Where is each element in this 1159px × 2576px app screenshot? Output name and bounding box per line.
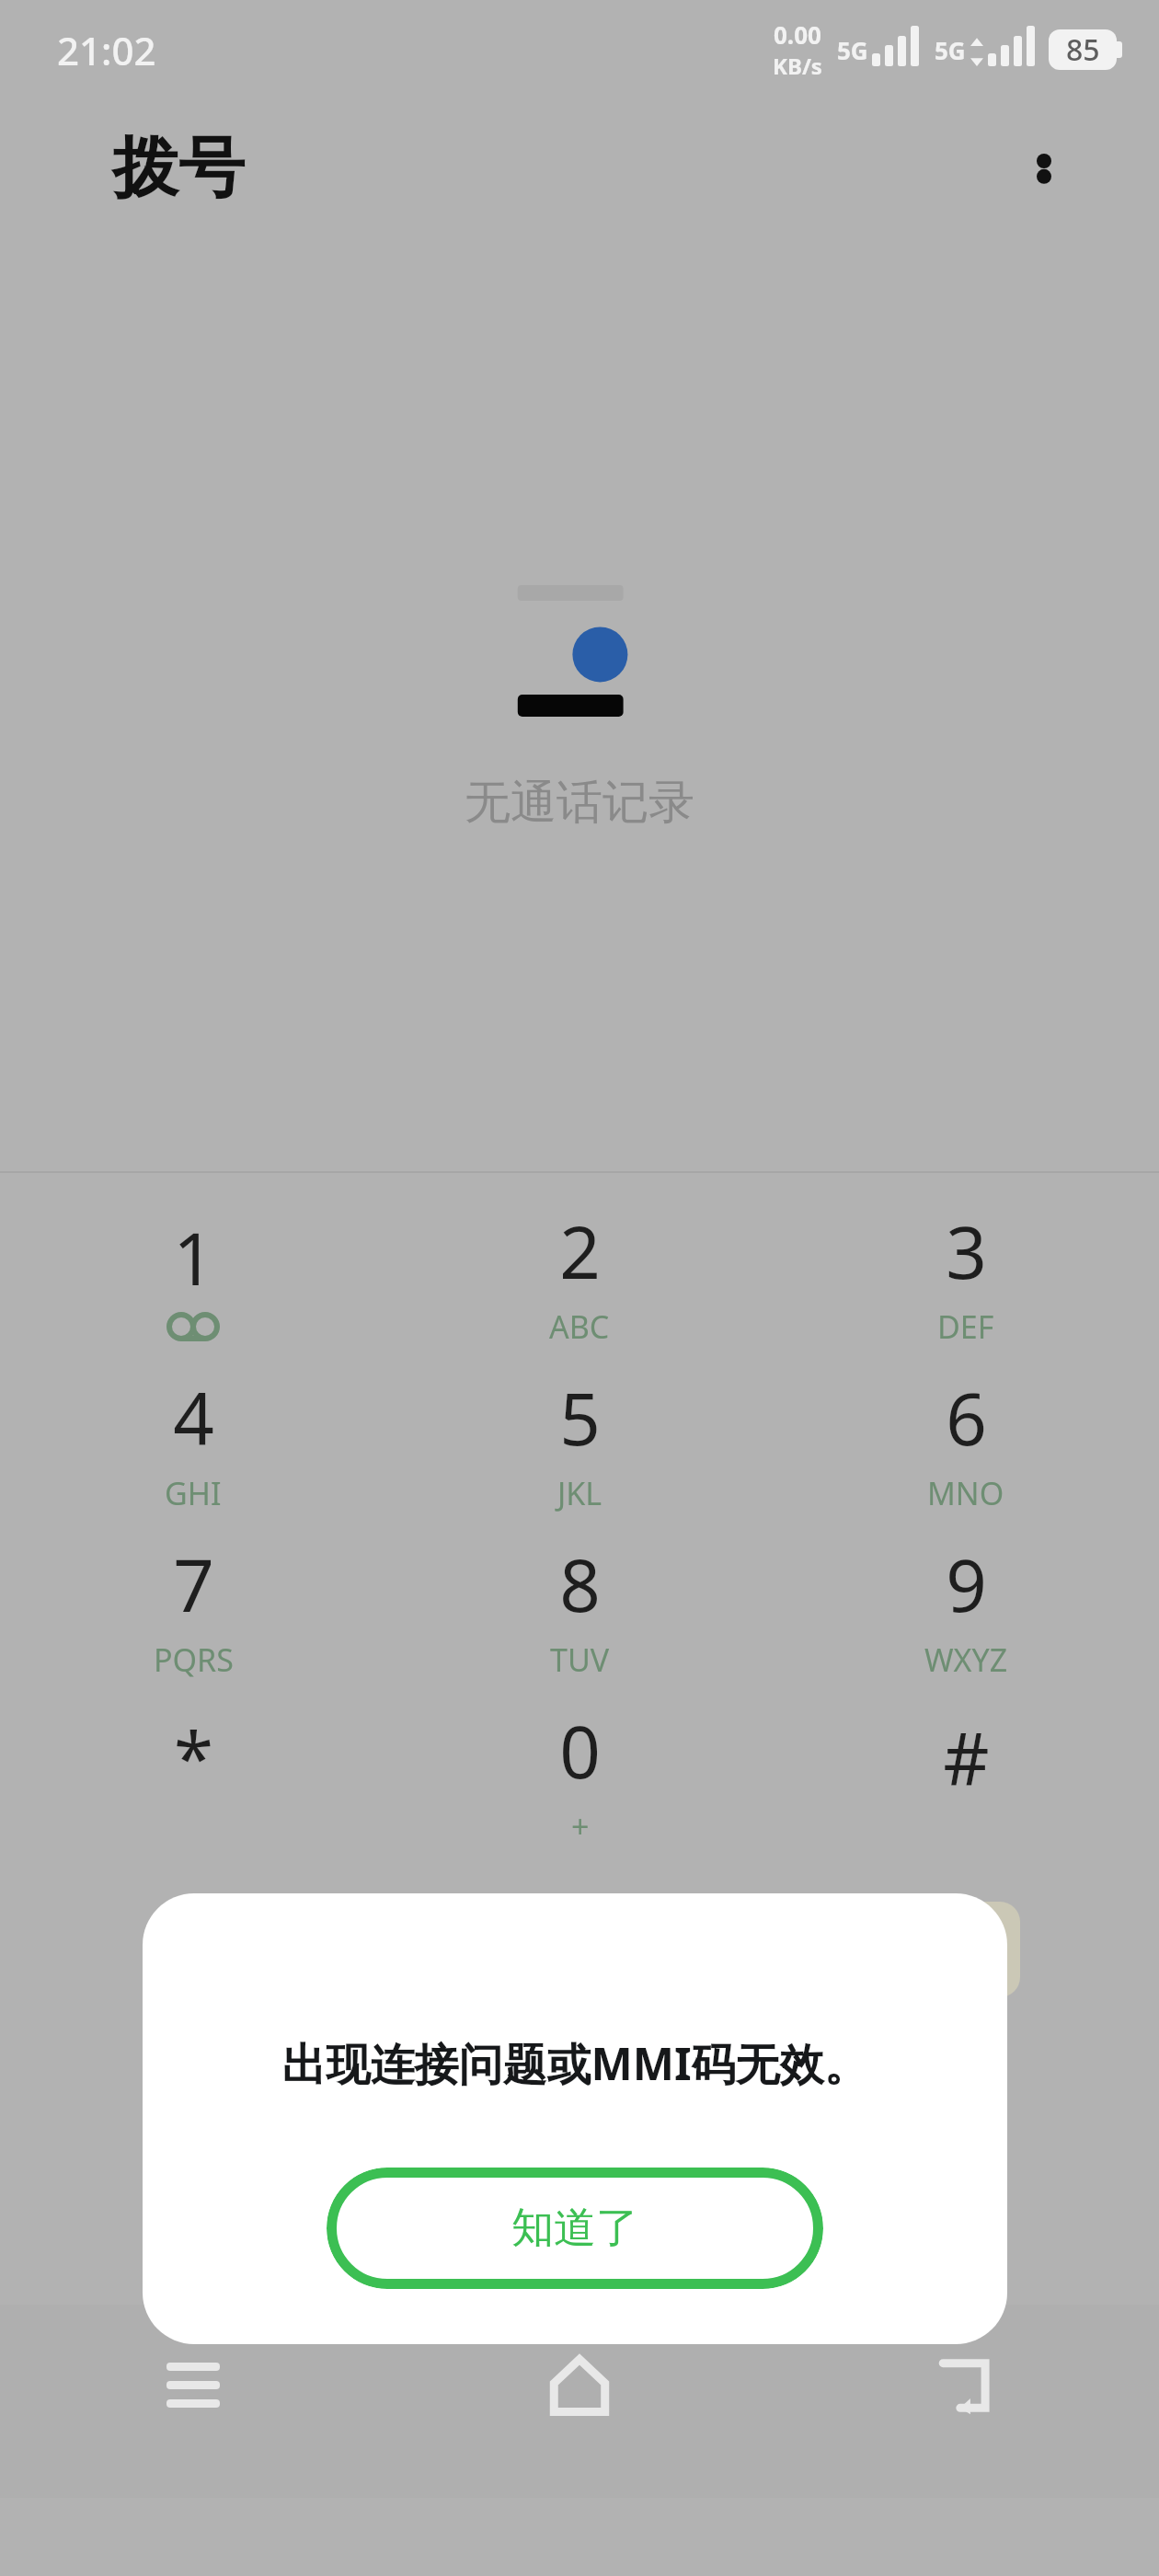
button[interactable]: 8 [386, 1524, 773, 1691]
staticText: 联系人 [524, 2217, 635, 2263]
button[interactable]: Home [386, 2330, 773, 2441]
button[interactable]: More options [1003, 127, 1085, 210]
staticText: 知道了 [511, 2202, 638, 2255]
button[interactable]: 3 [773, 1191, 1159, 1358]
staticText: GHI [165, 1472, 222, 1514]
staticText: 0.00 [774, 18, 821, 51]
staticText: ABC [549, 1305, 610, 1348]
staticText: 2 [559, 1202, 601, 1300]
button[interactable]: Keypad options [0, 1857, 386, 2041]
button[interactable]: * [0, 1691, 386, 1857]
staticText: 5G [935, 34, 966, 66]
button[interactable]: 6 [773, 1358, 1159, 1524]
staticText: 6 [946, 1369, 987, 1466]
staticText: JKL [557, 1472, 602, 1514]
button[interactable]: 拨号 [0, 2176, 386, 2305]
staticText: 1 [173, 1209, 214, 1306]
button[interactable]: Recents [0, 2330, 386, 2441]
staticText: PQRS [154, 1639, 234, 1681]
staticText: 21:02 [57, 24, 156, 76]
staticText: WXYZ [924, 1639, 1008, 1681]
button[interactable]: 7 [0, 1524, 386, 1691]
staticText: MNO [927, 1472, 1004, 1514]
staticText: + [571, 1805, 590, 1847]
staticText: # [943, 1708, 990, 1806]
staticText: 7 [173, 1535, 214, 1633]
button[interactable]: Back [773, 2330, 1159, 2441]
button[interactable]: 5 [386, 1358, 773, 1524]
button[interactable]: # [773, 1691, 1159, 1857]
staticText: 出现连接问题或MMI码无效。 [281, 2033, 868, 2094]
button[interactable]: 4 [0, 1358, 386, 1524]
staticText: 9 [946, 1535, 987, 1633]
staticText: 无通话记录 [465, 774, 694, 832]
staticText: 8 [559, 1535, 601, 1633]
staticText: TUV [550, 1639, 610, 1681]
button[interactable]: 知道了 [327, 2168, 823, 2289]
button[interactable]: Backspace [773, 1857, 1159, 2041]
staticText: 3 [946, 1202, 987, 1300]
button[interactable]: 2 [386, 1191, 773, 1358]
button[interactable]: 1 [0, 1191, 386, 1358]
staticText: 5G [837, 34, 868, 66]
staticText: 85 [1066, 29, 1100, 70]
staticText: * [174, 1708, 213, 1806]
staticText: 4 [173, 1369, 214, 1466]
staticText: DEF [937, 1305, 994, 1348]
staticText: 0 [559, 1702, 601, 1800]
button[interactable]: 联系人 [386, 2176, 773, 2305]
staticText: KB/s [773, 51, 822, 81]
staticText: 5 [559, 1369, 601, 1466]
button[interactable]: 收藏 [773, 2176, 1159, 2305]
staticText: 拨号 [112, 127, 245, 211]
button[interactable]: 9 [773, 1524, 1159, 1691]
button[interactable]: 0 [386, 1691, 773, 1857]
